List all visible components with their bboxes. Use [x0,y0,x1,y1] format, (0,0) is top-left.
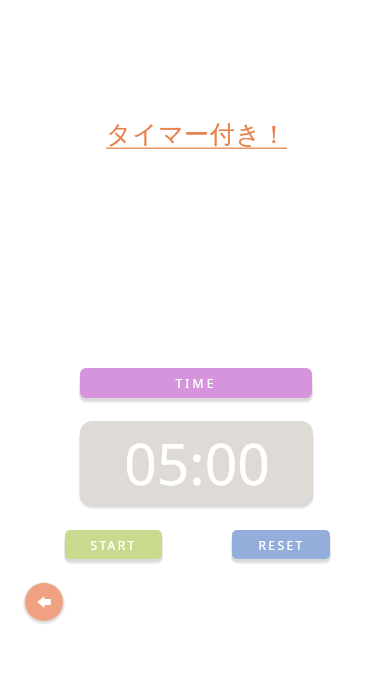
button[interactable]: タイマー付き！ [96,114,296,154]
button[interactable]: START [65,530,162,559]
button[interactable]: 05:00 [80,421,313,504]
staticText: START [90,537,137,553]
button[interactable]: RESET [232,530,330,559]
staticText: RESET [258,537,305,553]
staticText: TIME [175,375,217,391]
staticText: タイマー付き！ [106,119,287,150]
button[interactable]: Back [25,583,63,621]
staticText: 05:00 [124,424,270,502]
button[interactable]: TIME [80,368,312,398]
